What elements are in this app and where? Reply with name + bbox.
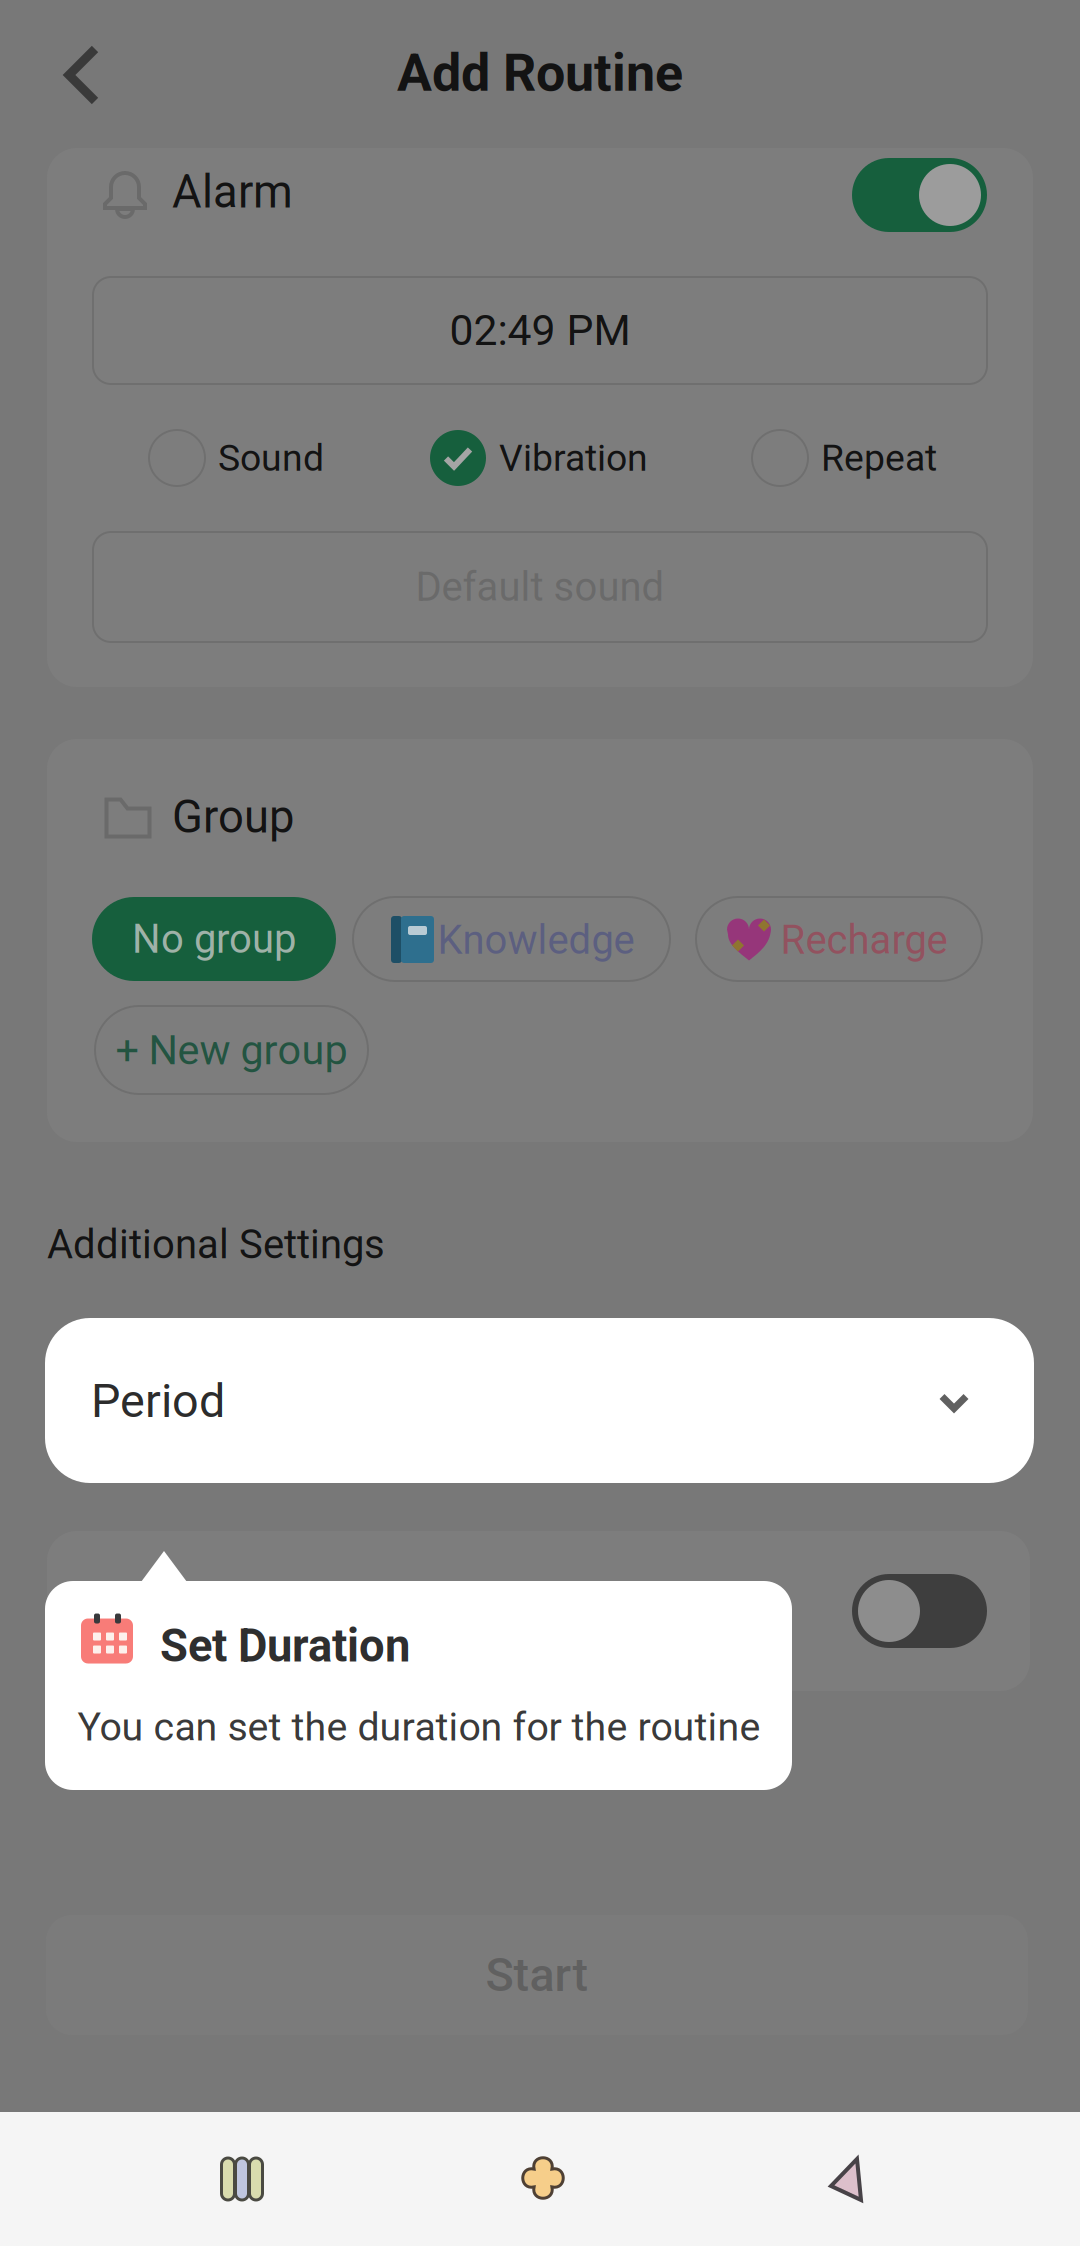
button[interactable]: Default sound [93,532,987,642]
staticText: + New group [115,1026,347,1074]
button[interactable]: Profile [745,2112,945,2246]
staticText: Start [485,1948,588,2002]
staticText: Sound [218,436,324,480]
staticText: Default sound [415,564,664,610]
button[interactable]: Statistics [128,2112,328,2246]
button[interactable]: Set duration off [852,1574,987,1648]
staticText: 02:49 PM [449,305,630,355]
button[interactable]: Add routine [443,2112,643,2246]
button[interactable]: Sound [149,430,324,486]
staticText: Additional Settings [47,1221,385,1268]
button[interactable]: No group [92,897,336,981]
staticText: Vibration [499,436,648,480]
staticText: Set Duration [160,1619,410,1672]
staticText: Repeat [821,436,937,480]
button[interactable]: Recharge [696,897,982,981]
button[interactable]: Repeat [752,430,937,486]
staticText: Alarm [172,165,293,218]
staticText: Add Routine [397,42,683,103]
staticText: No group [132,916,296,962]
button[interactable]: Knowledge [353,897,670,981]
staticText: You can set the duration for the routine [77,1704,760,1750]
button[interactable]: + New group [95,1006,368,1094]
button[interactable]: Period [45,1318,1034,1483]
button[interactable]: 02:49 PM [93,277,987,384]
staticText: Group [172,790,294,843]
staticText: Recharge [780,917,947,963]
button[interactable]: Vibration [430,430,648,486]
staticText: Knowledge [437,917,634,963]
button[interactable]: Back [32,30,132,120]
button[interactable]: Alarm on [852,158,987,232]
staticText: Period [91,1374,225,1428]
